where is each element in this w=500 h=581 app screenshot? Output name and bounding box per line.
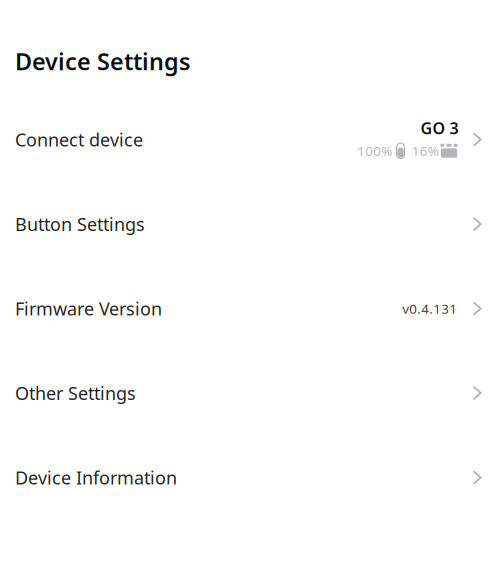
staticText: Other Settings xyxy=(15,381,136,405)
staticText: Device Settings xyxy=(15,45,191,77)
staticText: 16% xyxy=(412,142,439,160)
button[interactable]: Connect device xyxy=(0,97,500,182)
staticText: 100% xyxy=(357,142,392,160)
staticText: Button Settings xyxy=(15,212,145,236)
button[interactable]: Other Settings xyxy=(0,351,500,435)
staticText: v0.4.131 xyxy=(402,299,457,318)
staticText: Connect device xyxy=(15,127,143,152)
button[interactable]: Device Information xyxy=(0,435,500,520)
button[interactable]: Button Settings xyxy=(0,182,500,266)
staticText: Device Information xyxy=(15,465,177,490)
button[interactable]: Firmware Version xyxy=(0,266,500,351)
staticText: Firmware Version xyxy=(15,296,162,321)
staticText: GO 3 xyxy=(421,117,459,139)
